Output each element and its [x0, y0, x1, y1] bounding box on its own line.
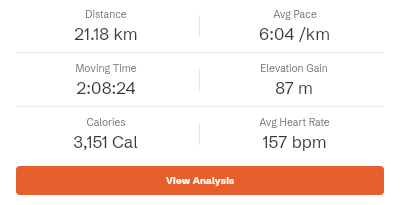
staticText: Moving Time: [75, 62, 137, 75]
staticText: 21.18 km: [74, 23, 138, 44]
staticText: 87 m: [275, 77, 313, 98]
button[interactable]: View Analysis: [16, 166, 384, 195]
staticText: 3,151 Cal: [73, 131, 138, 152]
staticText: 2:08:24: [76, 77, 136, 98]
staticText: 157 bpm: [262, 131, 327, 152]
staticText: Elevation Gain: [260, 62, 328, 75]
staticText: Calories: [86, 116, 126, 129]
staticText: View Analysis: [166, 175, 235, 187]
staticText: Avg Pace: [273, 8, 317, 21]
staticText: 6:04 /km: [259, 23, 330, 44]
staticText: Avg Heart Rate: [259, 116, 330, 129]
staticText: Distance: [85, 8, 127, 21]
